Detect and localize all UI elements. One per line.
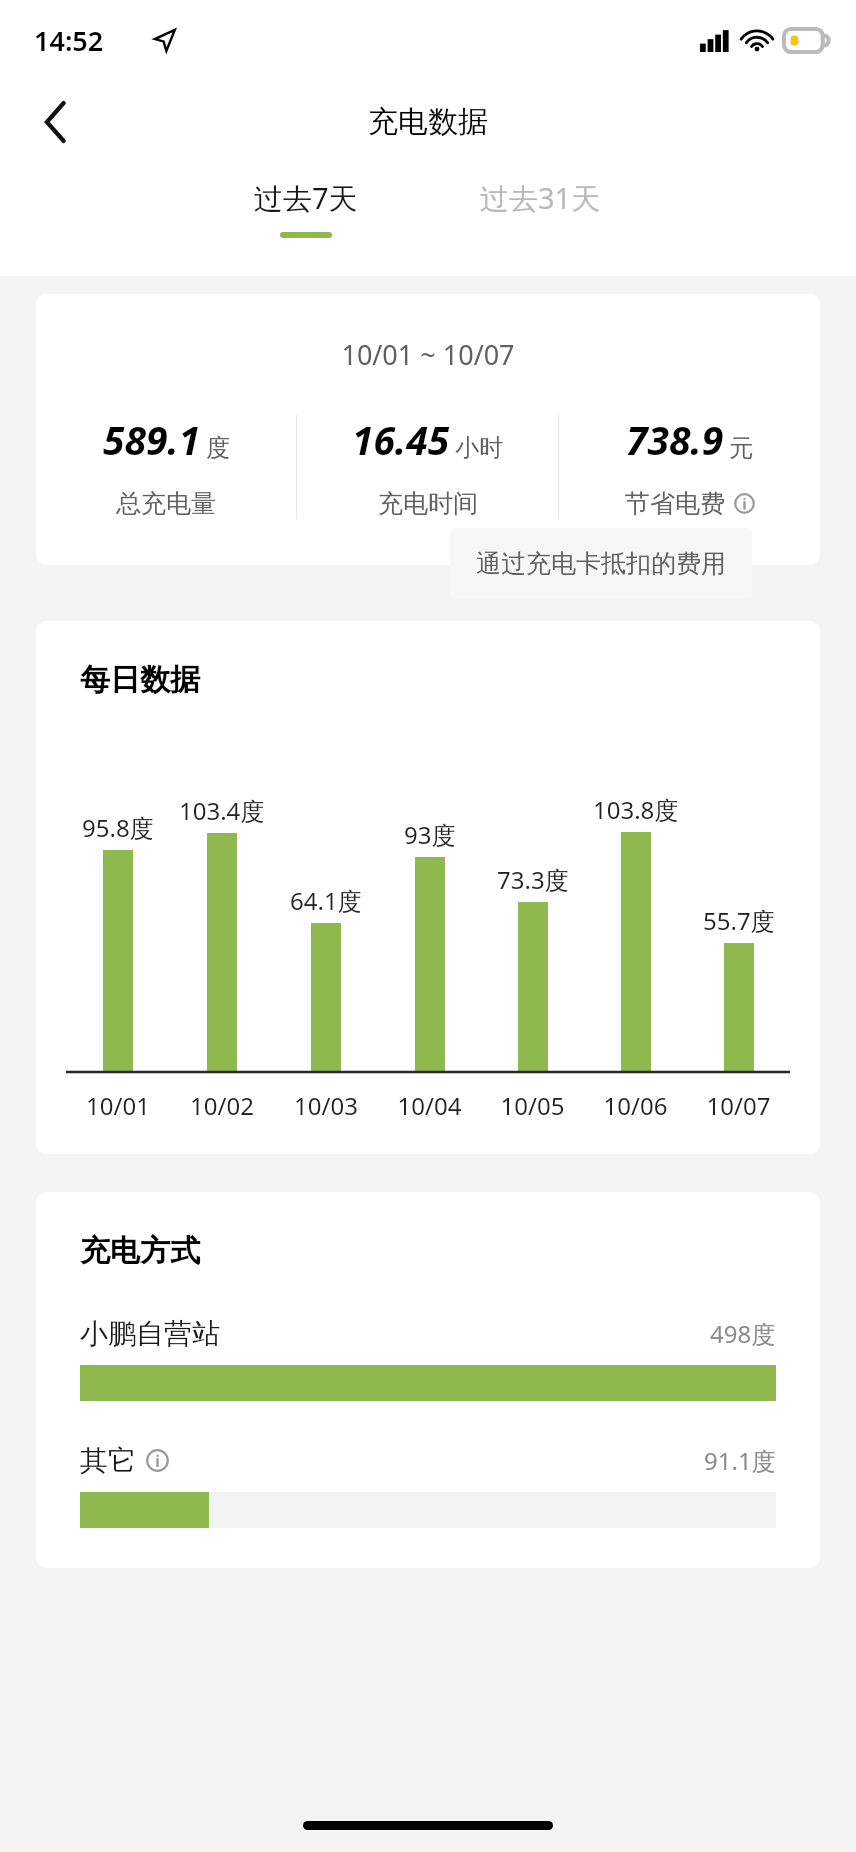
staticText: 总充电量 <box>116 488 216 519</box>
button[interactable]: 738.9 <box>559 413 820 519</box>
staticText: 小时 <box>455 433 503 463</box>
other: Info <box>734 493 755 514</box>
staticText: 10/04 <box>378 1089 481 1122</box>
other: Info <box>146 1449 169 1472</box>
staticText: 每日数据 <box>80 661 200 699</box>
button[interactable]: Back <box>28 94 84 150</box>
staticText: 10/01 <box>66 1089 170 1122</box>
staticText: 10/07 <box>687 1089 790 1122</box>
staticText: 589.1 <box>103 413 201 466</box>
button[interactable]: 589.1 <box>36 413 296 519</box>
button[interactable]: 过去7天 <box>234 164 378 252</box>
staticText: 103.8度 <box>593 793 679 826</box>
staticText: 过去31天 <box>480 178 601 218</box>
staticText: 充电方式 <box>80 1232 200 1270</box>
staticText: 10/05 <box>481 1089 584 1122</box>
staticText: 10/06 <box>584 1089 687 1122</box>
staticText: 度 <box>206 433 230 463</box>
staticText: 通过充电卡抵扣的费用 <box>476 548 726 579</box>
staticText: 节省电费 <box>625 488 725 519</box>
staticText: 55.7度 <box>703 904 775 937</box>
staticText: 14:52 <box>34 22 104 59</box>
staticText: 10/03 <box>274 1089 378 1122</box>
staticText: 73.3度 <box>497 863 569 896</box>
staticText: 738.9 <box>626 413 724 466</box>
staticText: 元 <box>729 433 753 463</box>
staticText: 103.4度 <box>179 794 265 827</box>
staticText: 64.1度 <box>290 884 362 917</box>
staticText: 95.8度 <box>82 811 154 844</box>
staticText: 10/01 ~ 10/07 <box>36 336 820 373</box>
staticText: 93度 <box>404 818 456 851</box>
button[interactable]: 16.45 <box>297 413 558 519</box>
staticText: 过去7天 <box>254 178 358 218</box>
staticText: 10/02 <box>170 1089 274 1122</box>
staticText: 充电时间 <box>378 488 478 519</box>
staticText: 498度 <box>710 1317 776 1350</box>
staticText: 小鹏自营站 <box>80 1316 220 1351</box>
staticText: 16.45 <box>352 413 450 466</box>
button[interactable]: 小鹏自营站 <box>36 1316 820 1401</box>
button[interactable]: 其它 <box>36 1443 820 1528</box>
staticText: 充电数据 <box>368 103 488 141</box>
staticText: 其它 <box>80 1443 136 1478</box>
button[interactable]: 过去31天 <box>460 164 621 232</box>
staticText: 91.1度 <box>704 1444 776 1477</box>
